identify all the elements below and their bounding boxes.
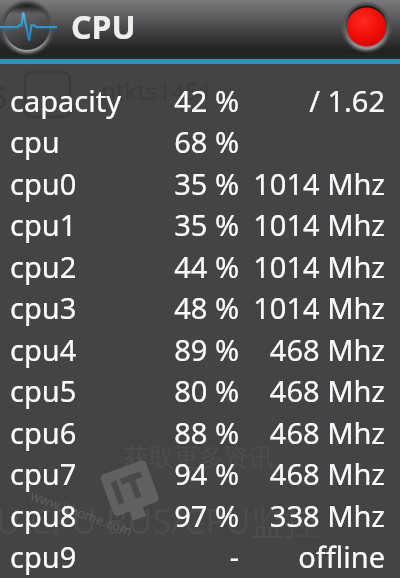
- staticText: capacity: [10, 81, 121, 120]
- staticText: 89 %: [0, 330, 239, 369]
- staticText: cpu8: [10, 496, 77, 535]
- staticText: 44 %: [0, 247, 239, 286]
- button[interactable]: cpu0: [0, 163, 400, 204]
- staticText: 68 %: [0, 122, 239, 161]
- staticText: cpu1: [10, 205, 77, 244]
- staticText: -: [0, 537, 239, 576]
- button[interactable]: capacity: [0, 80, 400, 121]
- staticText: 5: [0, 77, 8, 118]
- staticText: 1014 Mhz: [0, 164, 385, 203]
- button[interactable]: cpu8: [0, 495, 400, 536]
- staticText: cpu6: [10, 413, 77, 452]
- staticText: 48 %: [0, 288, 239, 327]
- staticText: / 1.62: [0, 81, 385, 120]
- staticText: 94 %: [0, 454, 239, 493]
- staticText: cpu: [10, 122, 60, 161]
- button[interactable]: cpu3: [0, 287, 400, 328]
- staticText: 97 %: [0, 496, 239, 535]
- staticText: 获取更多资讯: [124, 442, 274, 473]
- button[interactable]: cpu2: [0, 246, 400, 287]
- button[interactable]: cpu7: [0, 453, 400, 494]
- staticText: U CPU BUS/CPU监控: [0, 498, 319, 544]
- staticText: 468 Mhz: [0, 454, 385, 493]
- staticText: 42 %: [0, 81, 239, 120]
- staticText: 80 %: [0, 371, 239, 410]
- button[interactable]: cpu4: [0, 329, 400, 370]
- staticText: 1014 Mhz: [0, 247, 385, 286]
- staticText: 35 %: [0, 164, 239, 203]
- button[interactable]: cpu6: [0, 412, 400, 453]
- button[interactable]: cpu9: [0, 536, 400, 577]
- staticText: 468 Mhz: [0, 413, 385, 452]
- button[interactable]: cpu5: [0, 370, 400, 411]
- staticText: cpu5: [10, 371, 77, 410]
- staticText: cpu4: [10, 330, 77, 369]
- staticText: ntkts1451: [101, 74, 213, 107]
- button[interactable]: CPU monitor: [0, 0, 60, 59]
- staticText: 35 %: [0, 205, 239, 244]
- staticText: cpu2: [10, 247, 77, 286]
- staticText: cpu9: [10, 537, 77, 576]
- button[interactable]: Record: [338, 0, 394, 56]
- button[interactable]: cpu1: [0, 204, 400, 245]
- staticText: 1014 Mhz: [0, 288, 385, 327]
- staticText: cpu7: [10, 454, 77, 493]
- staticText: [0, 122, 385, 161]
- staticText: www.ithome.com: [28, 486, 135, 540]
- staticText: CPU: [71, 5, 136, 49]
- staticText: 468 Mhz: [0, 330, 385, 369]
- staticText: 338 Mhz: [0, 496, 385, 535]
- staticText: 1014 Mhz: [0, 205, 385, 244]
- button[interactable]: cpu: [0, 121, 400, 162]
- staticText: cpu3: [10, 288, 77, 327]
- staticText: cpu0: [10, 164, 77, 203]
- staticText: offline: [0, 537, 385, 576]
- staticText: 88 %: [0, 413, 239, 452]
- staticText: 468 Mhz: [0, 371, 385, 410]
